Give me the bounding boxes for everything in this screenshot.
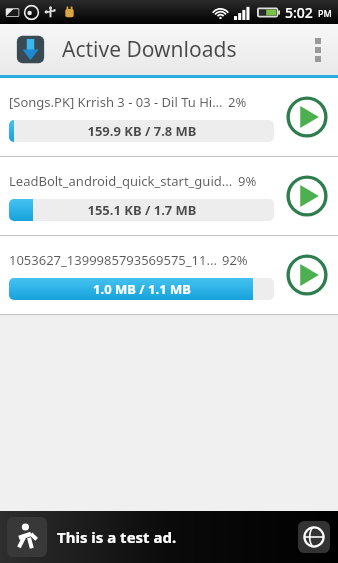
button[interactable]: 1053627_1399985793569575_11... [0,236,338,314]
staticText: 159.9 KB / 7.8 MB [87,122,197,140]
staticText: 92% [222,251,248,269]
button[interactable]: [Songs.PK] Krrish 3 - 03 - Dil Tu Hi... [0,78,338,156]
staticText: [Songs.PK] Krrish 3 - 03 - Dil Tu Hi... [9,93,223,111]
staticText: LeadBolt_android_quick_start_guid... [9,172,233,190]
staticText: PM [318,7,332,19]
button[interactable]: LeadBolt_android_quick_start_guid... [0,157,338,235]
staticText: 2% [228,93,247,111]
staticText: 5:02 [285,3,313,22]
button[interactable]: More options [298,24,338,75]
staticText: This is a test ad. [57,527,177,547]
staticText: 1053627_1399985793569575_11... [9,251,217,269]
staticText: Active Downloads [62,35,237,64]
button[interactable]: This is a test ad. [0,511,338,563]
button[interactable]: Pause or resume download [284,173,330,219]
staticText: 9% [238,172,257,190]
button[interactable]: Pause or resume download [284,252,330,298]
staticText: 1.0 MB / 1.1 MB [93,280,191,298]
button[interactable]: Pause or resume download [284,94,330,140]
staticText: 155.1 KB / 1.7 MB [87,201,197,219]
button[interactable]: Open ad in browser [297,520,331,554]
